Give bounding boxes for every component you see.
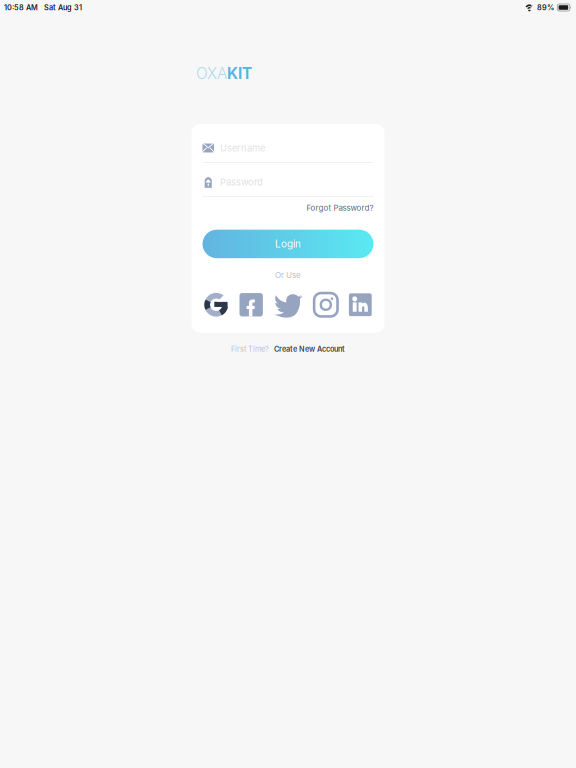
- staticText: 89%: [537, 3, 554, 12]
- button[interactable]: Forgot Password?: [306, 201, 373, 215]
- button[interactable]: Login: [202, 230, 373, 258]
- staticText: Sat Aug 31: [44, 3, 82, 12]
- staticText: 10:58 AM: [4, 3, 38, 12]
- staticText: OXA: [196, 64, 227, 83]
- button[interactable]: Sign in with Twitter: [274, 293, 303, 316]
- staticText: First Time?: [231, 345, 269, 354]
- staticText: Or Use: [275, 270, 301, 280]
- button[interactable]: Password: [202, 174, 373, 190]
- staticText: Forgot Password?: [306, 203, 373, 213]
- staticText: Password: [220, 176, 263, 188]
- staticText: KIT: [227, 64, 252, 83]
- button[interactable]: Username: [202, 140, 373, 156]
- staticText: Login: [275, 238, 301, 250]
- button[interactable]: Sign in with LinkedIn: [349, 293, 372, 316]
- staticText: Create New Account: [274, 345, 345, 354]
- button[interactable]: Sign in with Instagram: [314, 293, 337, 316]
- button[interactable]: Sign in with Facebook: [239, 293, 263, 316]
- button[interactable]: Create New Account: [274, 345, 345, 354]
- staticText: Username: [220, 142, 265, 154]
- button[interactable]: Sign in with Google: [204, 293, 228, 317]
